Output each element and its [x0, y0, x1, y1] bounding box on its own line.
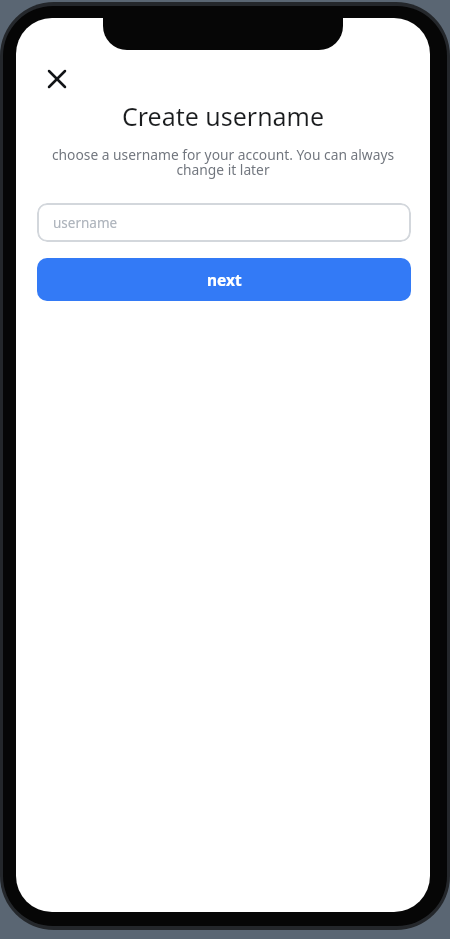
- staticText: username: [53, 214, 118, 232]
- staticText: Create username: [16, 99, 430, 133]
- staticText: next: [207, 269, 242, 290]
- button[interactable]: next: [37, 258, 411, 301]
- button[interactable]: [43, 65, 71, 93]
- button[interactable]: username: [37, 203, 411, 242]
- staticText: choose a username for your account. You …: [16, 145, 430, 179]
